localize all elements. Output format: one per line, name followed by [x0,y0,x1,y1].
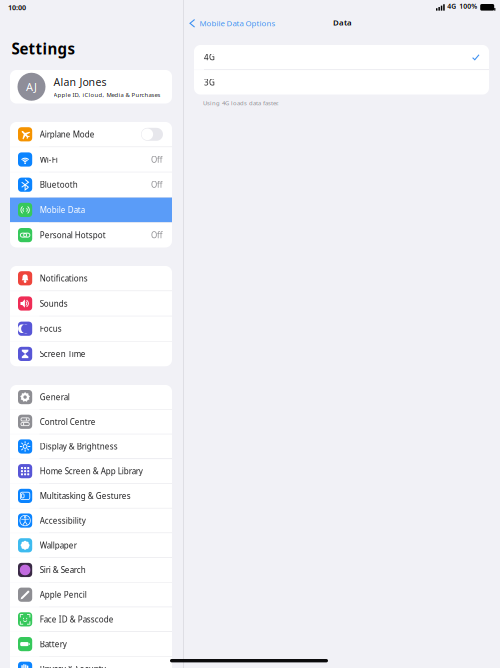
staticText: Notifications [40,273,88,284]
button[interactable]: Mobile Data Options [190,16,275,31]
button[interactable]: AJ [10,70,172,103]
button[interactable]: 3G [194,70,489,94]
staticText: Bluetooth [40,179,78,190]
staticText: Mobile Data [40,204,85,215]
staticText: General [40,392,70,402]
staticText: Apple Pencil [40,589,87,600]
staticText: Settings [11,38,75,59]
staticText: Focus [40,323,62,334]
staticText: Screen Time [40,348,86,359]
button[interactable]: General [10,385,172,409]
button[interactable]: Mobile Data [10,198,172,222]
button[interactable]: Siri & Search [10,558,172,582]
staticText: Off [151,230,163,241]
staticText: Siri & Search [40,564,86,575]
button[interactable]: Notifications [10,266,172,291]
staticText: 3G [204,77,215,88]
staticText: Privacy & Security [40,663,106,668]
staticText: Airplane Mode [40,129,95,140]
button[interactable]: Airplane Mode [10,122,172,147]
button[interactable]: Bluetooth [10,172,172,197]
button[interactable]: Battery [10,632,172,656]
staticText: Data [333,17,352,28]
button[interactable]: Accessibility [10,508,172,533]
staticText: Home Screen & App Library [40,466,143,477]
staticText: Using 4G loads data faster. [203,99,279,107]
staticText: 4G [447,1,456,11]
staticText: Personal Hotspot [40,230,106,241]
staticText: AJ [26,79,37,94]
staticText: Multitasking & Gestures [40,490,131,501]
button[interactable]: 4G [194,45,489,69]
button[interactable]: Apple Pencil [10,583,172,607]
staticText: Sounds [40,298,68,309]
staticText: Apple ID, iCloud, Media & Purchases [53,91,160,99]
button[interactable]: Wi-Fi [10,147,172,172]
button[interactable]: Control Centre [10,410,172,434]
staticText: Wallpaper [40,540,77,551]
button[interactable]: Display & Brightness [10,434,172,458]
button[interactable]: Wallpaper [10,533,172,557]
button[interactable]: Personal Hotspot [10,223,172,247]
staticText: Wi-Fi [40,154,58,165]
button[interactable]: Home Screen & App Library [10,459,172,483]
button[interactable]: Focus [10,316,172,341]
staticText: Control Centre [40,416,96,427]
staticText: Face ID & Passcode [40,614,114,625]
button[interactable]: Screen Time [10,342,172,366]
staticText: 10:00 [8,2,26,12]
staticText: Display & Brightness [40,441,118,452]
staticText: Off [151,179,163,190]
staticText: 100% [459,1,477,11]
staticText: Mobile Data Options [199,18,275,29]
button[interactable]: Multitasking & Gestures [10,484,172,508]
button[interactable]: Privacy & Security [10,657,172,668]
staticText: 4G [204,52,215,63]
button[interactable]: Sounds [10,291,172,316]
staticText: Off [151,154,163,165]
staticText: Alan Jones [53,75,106,89]
staticText: Battery [40,639,67,649]
staticText: Accessibility [40,515,86,526]
button[interactable]: Face ID & Passcode [10,607,172,631]
